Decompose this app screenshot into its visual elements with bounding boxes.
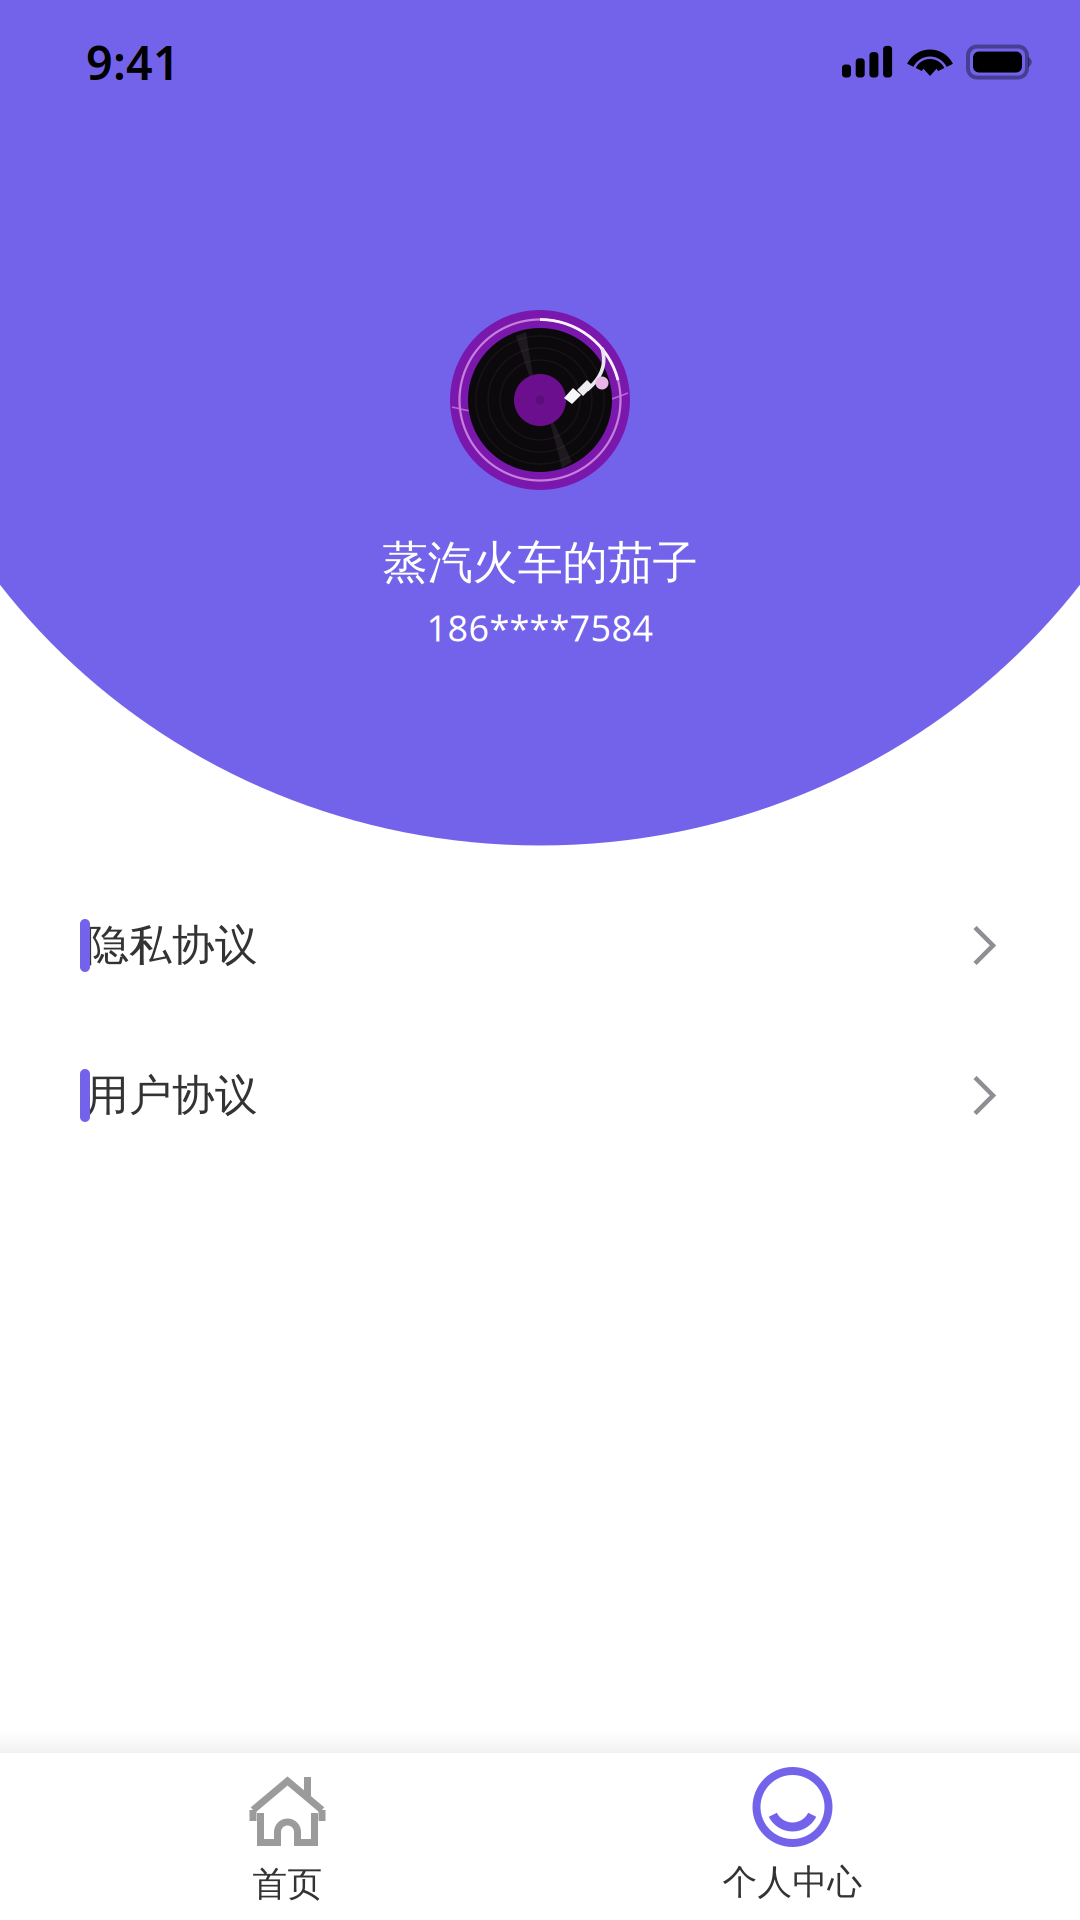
staticText: 9:41 xyxy=(86,31,180,93)
staticText: 隐私协议 xyxy=(86,919,258,972)
staticText: 个人中心 xyxy=(722,1861,862,1904)
button[interactable]: 首页 xyxy=(35,1753,540,1920)
button[interactable]: 个人中心 xyxy=(540,1753,1045,1920)
staticText: 用户协议 xyxy=(86,1069,258,1122)
button[interactable]: 隐私协议 xyxy=(0,870,1080,1020)
staticText: 首页 xyxy=(252,1863,322,1906)
button[interactable]: 用户协议 xyxy=(0,1020,1080,1170)
staticText: 蒸汽火车的茄子 xyxy=(382,535,697,591)
staticText: 186****7584 xyxy=(426,604,653,651)
